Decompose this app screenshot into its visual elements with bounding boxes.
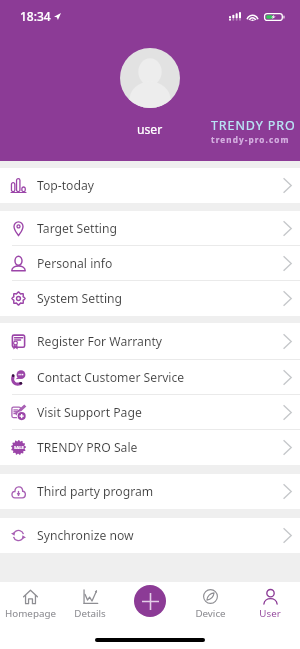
button[interactable]: Contact Customer Service xyxy=(0,360,300,395)
button[interactable]: Top-today xyxy=(0,168,300,203)
staticText: Device xyxy=(195,607,226,620)
button[interactable]: System Setting xyxy=(0,281,300,316)
staticText: TRENDY PRO xyxy=(211,117,296,134)
staticText: Contact Customer Service xyxy=(37,369,185,386)
staticText: Visit Support Page xyxy=(37,404,142,421)
staticText: 18:34 xyxy=(20,8,51,24)
button[interactable]: Personal info xyxy=(0,246,300,281)
staticText: trendy-pro.com xyxy=(211,134,290,145)
button[interactable]: Details xyxy=(60,589,120,620)
staticText: System Setting xyxy=(37,290,123,307)
staticText: user xyxy=(137,121,163,138)
staticText: SALE xyxy=(14,445,24,451)
button[interactable]: User xyxy=(240,589,300,620)
button[interactable]: Target Setting xyxy=(0,211,300,246)
staticText: Personal info xyxy=(37,255,113,272)
staticText: TRENDY PRO Sale xyxy=(37,439,138,456)
button[interactable]: Device xyxy=(180,589,240,620)
button[interactable]: SALE xyxy=(0,430,300,465)
button[interactable]: Add xyxy=(134,585,166,617)
staticText: Register For Warranty xyxy=(37,333,163,350)
button[interactable]: Synchronize now xyxy=(0,518,300,553)
staticText: Third party program xyxy=(37,483,154,500)
button[interactable]: Visit Support Page xyxy=(0,395,300,430)
staticText: Homepage xyxy=(5,607,56,620)
staticText: Target Setting xyxy=(37,220,118,237)
staticText: User xyxy=(259,607,281,620)
button[interactable]: Third party program xyxy=(0,474,300,509)
staticText: Top-today xyxy=(37,177,95,194)
button[interactable]: Register For Warranty xyxy=(0,323,300,360)
button[interactable]: Homepage xyxy=(0,589,60,620)
staticText: Details xyxy=(74,607,106,620)
staticText: Synchronize now xyxy=(37,527,134,544)
